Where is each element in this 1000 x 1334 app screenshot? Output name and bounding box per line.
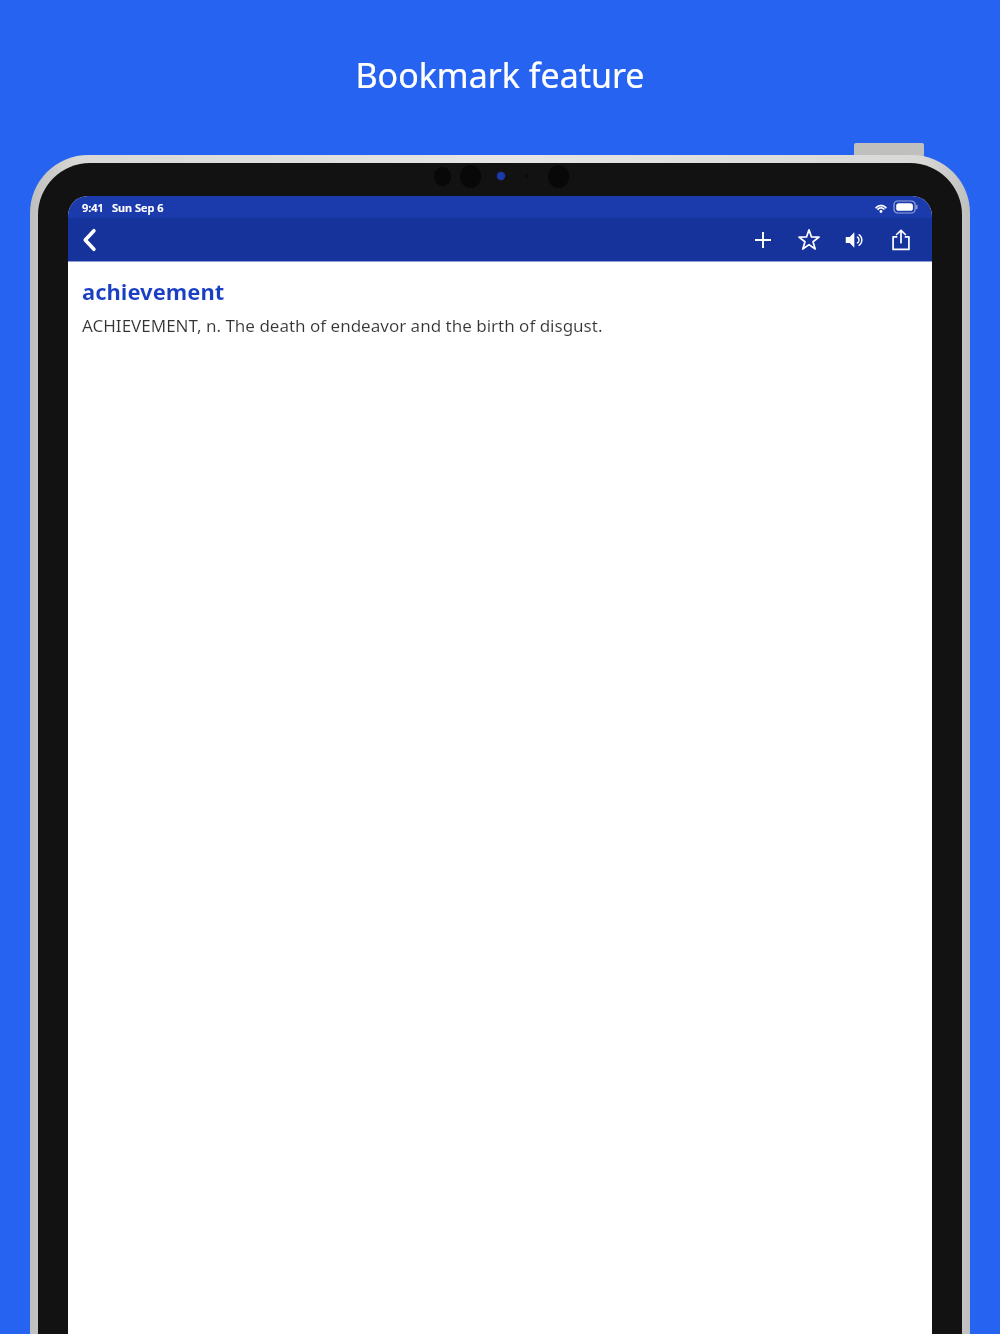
staticText: 9:41 (82, 200, 104, 215)
button[interactable]: Back (68, 218, 112, 261)
button[interactable]: Share (878, 218, 924, 261)
button[interactable]: Bookmark (786, 218, 832, 261)
button[interactable]: Speak (832, 218, 878, 261)
staticText: Sun Sep 6 (112, 200, 164, 215)
staticText: Bookmark feature (355, 52, 645, 98)
button[interactable]: Add (740, 218, 786, 261)
staticText: ACHIEVEMENT, n. The death of endeavor an… (82, 314, 603, 337)
staticText: achievement (82, 276, 225, 306)
